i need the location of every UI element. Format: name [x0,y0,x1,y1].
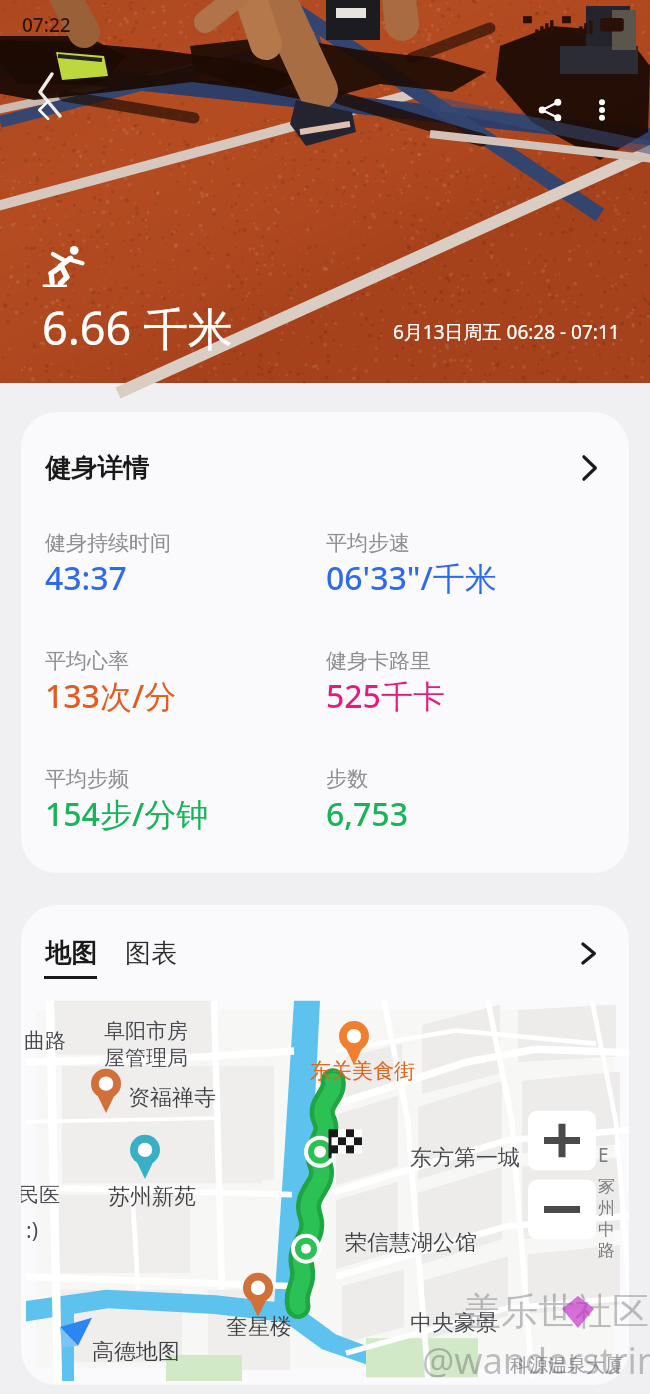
staticText: 东方第一城 [410,1144,520,1172]
button[interactable]: 地图 [44,937,97,979]
staticText: 平均心率 [45,648,129,674]
staticText: 图表 [125,937,177,970]
staticText: 苏州新苑 [108,1183,196,1211]
staticText: 健身卡路里 [326,648,431,674]
staticText: 东关美食街 [310,1058,415,1084]
staticText: 平均步速 [326,530,410,556]
staticText: 6月13日周五 06:28 - 07:11 [393,319,620,345]
staticText: 盖乐世社区 [464,1288,649,1335]
staticText: 民医 [21,1182,60,1208]
staticText: 奎星楼 [226,1313,292,1341]
staticText: 154步/分钟 [45,792,209,836]
button[interactable]: 健身详情 [21,412,629,524]
staticText: 健身详情 [45,452,149,485]
staticText: 6.66 千米 [42,297,233,358]
staticText: 阜阳市房 屋管理局 [104,1018,188,1071]
button[interactable]: Open map [570,940,606,967]
staticText: 中央豪景 [410,1309,498,1337]
staticText: 133次/分 [45,674,177,718]
staticText: 6,753 [326,792,408,836]
staticText: 资福禅寺 [128,1084,216,1112]
staticText: 科源温泉大厦 [510,1354,624,1378]
button[interactable]: More options [576,84,628,136]
staticText: 06'33"/千米 [326,556,497,600]
button[interactable]: Share [524,84,576,136]
staticText: 步数 [326,766,368,792]
staticText: @wanderstriny [422,1336,650,1385]
button[interactable]: Back [18,84,70,136]
staticText: 525千卡 [326,674,445,718]
staticText: 健身持续时间 [45,530,171,556]
staticText: 43:37 [45,556,127,600]
staticText: 高德地图 [92,1338,180,1366]
staticText: 07:22 [22,12,71,38]
button[interactable]: 图表 [125,937,177,979]
staticText: 地图 [45,937,97,970]
staticText: :) [26,1216,38,1245]
staticText: E [598,1142,609,1168]
staticText: 冢 州 中 路 [598,1176,615,1261]
staticText: 平均步频 [45,766,129,792]
staticText: 曲路 [24,1028,66,1054]
staticText: 荣信慧湖公馆 [345,1229,477,1257]
